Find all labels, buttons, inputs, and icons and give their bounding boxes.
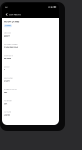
- button[interactable]: Back: [4, 11, 9, 18]
- staticText: P<USMD0012345: [4, 46, 18, 48]
- staticText: Issuing Authority: [4, 88, 17, 90]
- staticText: Given Names: [4, 77, 13, 79]
- staticText: JAMES: [4, 114, 10, 116]
- staticText: Scan Results: [9, 13, 21, 16]
- staticText: Expiry Date: [4, 55, 13, 57]
- staticText: MRZ Code: [4, 32, 11, 34]
- staticText: Document Number: [4, 43, 18, 45]
- staticText: USA: [4, 102, 7, 105]
- staticText: Q4E577: [4, 35, 10, 37]
- staticText: Surname: [4, 111, 11, 113]
- staticText: Gender: [4, 66, 10, 68]
- staticText: 9:41: [5, 6, 8, 8]
- staticText: VERIFIED: [5, 25, 11, 27]
- staticText: USA: [4, 91, 7, 93]
- staticText: 05/2025: [4, 57, 11, 60]
- staticText: MUSTY: [4, 80, 10, 82]
- staticText: F: [4, 69, 5, 71]
- staticText: Nationality: [4, 100, 12, 102]
- staticText: MUSTY JAMES: [4, 20, 19, 23]
